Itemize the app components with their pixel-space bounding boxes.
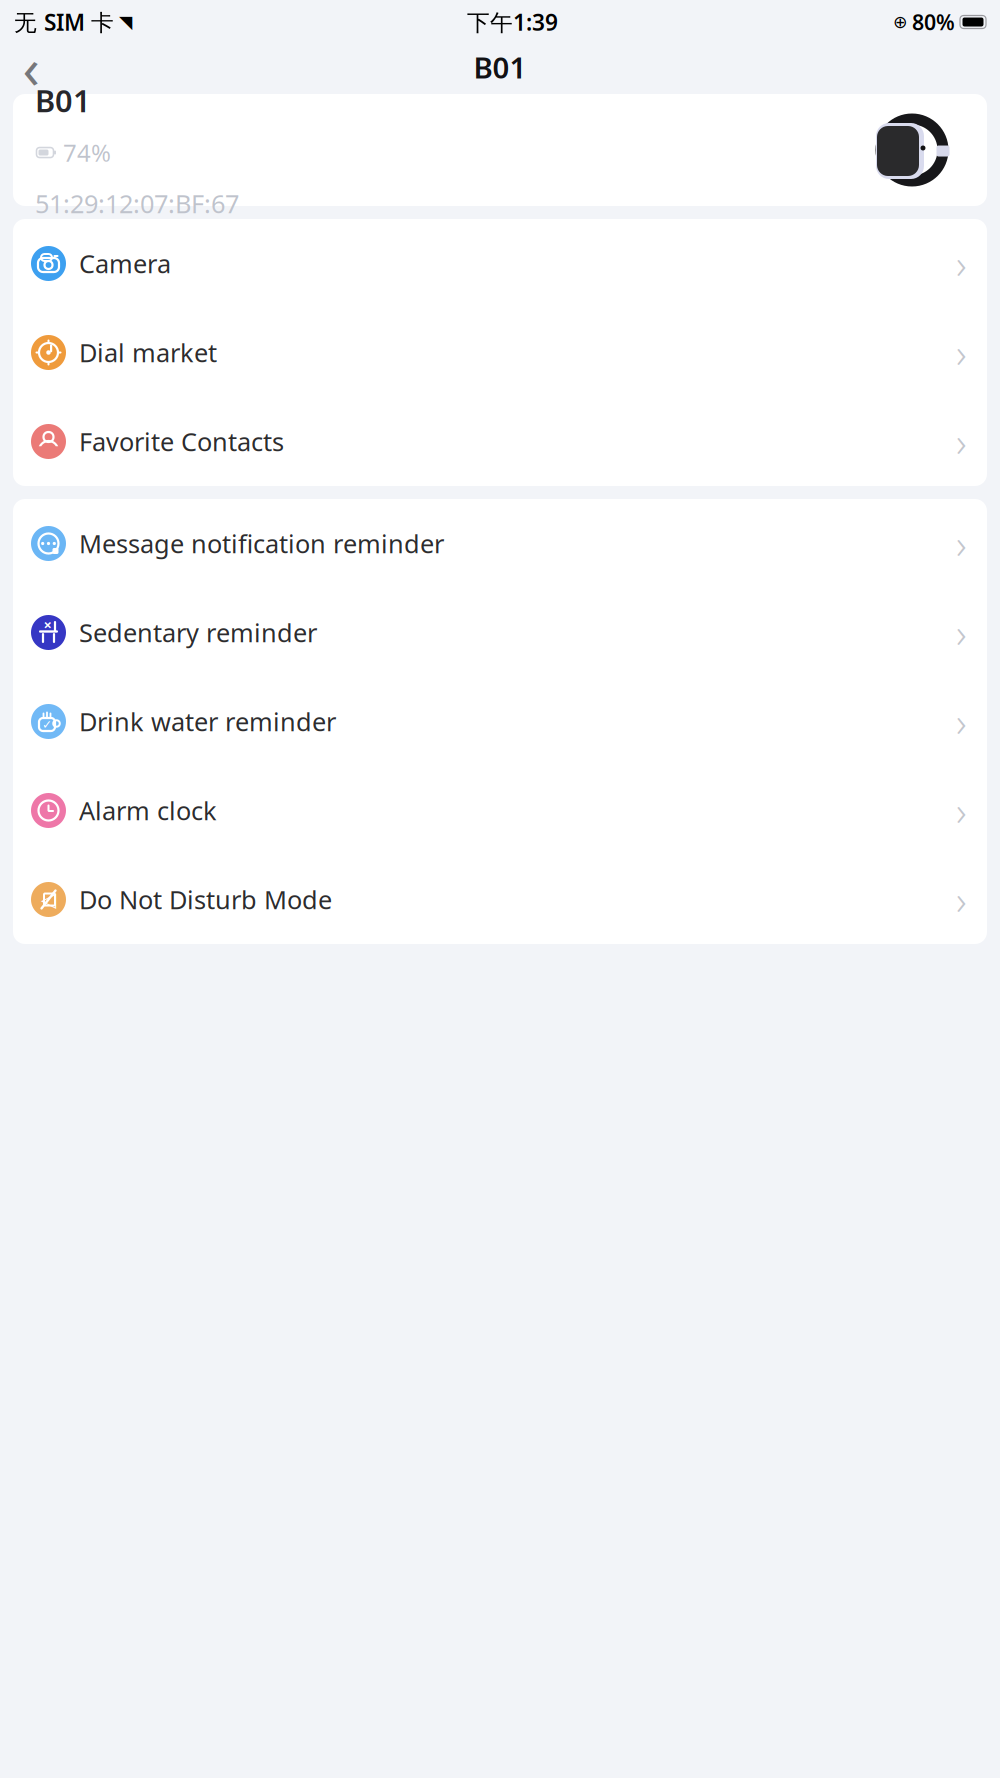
staticText: 下午1:39 — [467, 7, 558, 37]
staticText: Drink water reminder — [79, 705, 336, 738]
button[interactable]: Back — [8, 45, 54, 89]
staticText: Favorite Contacts — [79, 425, 284, 458]
button[interactable]: Alarm clock — [13, 766, 987, 855]
staticText: B01 — [473, 47, 526, 86]
button[interactable]: Message notification reminder — [13, 499, 987, 588]
staticText: Sedentary reminder — [79, 616, 317, 649]
staticText: Do Not Disturb Mode — [79, 883, 332, 916]
staticText: 80% — [912, 8, 955, 36]
staticText: ◁ — [41, 888, 56, 911]
button[interactable]: Dial market — [13, 308, 987, 397]
staticText: › — [956, 606, 967, 659]
staticText: › — [956, 784, 967, 837]
button[interactable]: B01 — [0, 94, 1000, 206]
staticText: ◥ — [119, 12, 132, 32]
staticText: › — [956, 415, 967, 468]
staticText: › — [956, 873, 967, 926]
staticText: › — [956, 517, 967, 570]
staticText: Dial market — [79, 336, 217, 369]
staticText: Alarm clock — [79, 794, 217, 827]
button[interactable]: ✓ — [13, 677, 987, 766]
staticText: ✓ — [42, 718, 52, 731]
button[interactable]: Camera — [13, 219, 987, 308]
staticText: ⊕ — [893, 12, 908, 32]
staticText: Message notification reminder — [79, 527, 444, 560]
staticText: ‹ — [22, 30, 39, 104]
staticText: × — [43, 615, 51, 634]
button[interactable]: Favorite Contacts — [13, 397, 987, 486]
staticText: 51:29:12:07:BF:67 — [35, 186, 239, 220]
button[interactable]: ◁ — [13, 855, 987, 944]
staticText: › — [956, 237, 967, 290]
staticText: B01 — [35, 80, 91, 121]
staticText: 无 SIM 卡 — [14, 7, 114, 37]
staticText: › — [956, 326, 967, 379]
staticText: Camera — [79, 247, 171, 280]
staticText: 74% — [63, 137, 111, 168]
staticText: › — [956, 695, 967, 748]
button[interactable]: × — [13, 588, 987, 677]
